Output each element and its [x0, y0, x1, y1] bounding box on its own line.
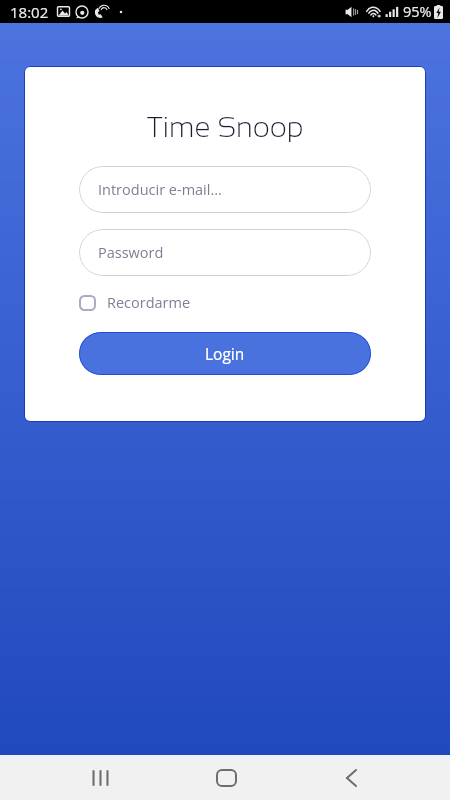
staticText: Introducir e-mail...: [98, 180, 222, 200]
staticText: Password: [98, 243, 164, 263]
staticText: 95%: [403, 2, 432, 22]
staticText: Login: [205, 343, 245, 364]
button[interactable]: Back: [309, 755, 393, 800]
button[interactable]: Login: [79, 332, 371, 375]
button[interactable]: Recent apps: [58, 755, 142, 800]
button[interactable]: Recordarme: [79, 293, 197, 313]
staticText: Time Snoop: [147, 111, 304, 143]
button[interactable]: Password: [79, 229, 371, 276]
button[interactable]: Introducir e-mail...: [79, 166, 371, 213]
staticText: 18:02: [10, 2, 49, 22]
staticText: Recordarme: [107, 293, 191, 313]
button[interactable]: Home: [184, 755, 268, 800]
